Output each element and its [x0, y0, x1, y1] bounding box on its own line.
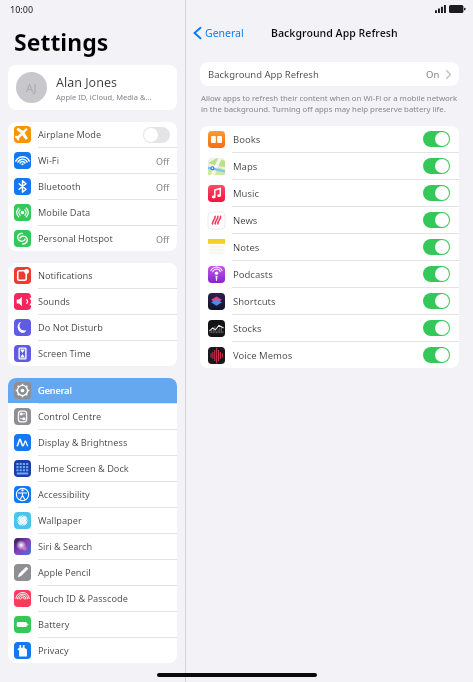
- button[interactable]: Music background refresh toggle: [423, 185, 450, 201]
- staticText: Wi-Fi: [38, 154, 156, 167]
- staticText: Maps: [233, 160, 423, 173]
- button[interactable]: Sounds: [8, 289, 177, 314]
- staticText: Siri & Search: [38, 540, 170, 553]
- button[interactable]: Voice Memos: [200, 342, 459, 368]
- staticText: Touch ID & Passcode: [38, 592, 170, 605]
- button[interactable]: Maps: [200, 153, 459, 179]
- staticText: On: [426, 68, 440, 81]
- button[interactable]: Wallpaper: [8, 508, 177, 533]
- button[interactable]: Stocks: [200, 315, 459, 341]
- staticText: Battery: [38, 618, 170, 631]
- button[interactable]: Screen Time: [8, 341, 177, 366]
- staticText: Podcasts: [233, 268, 423, 281]
- staticText: Home Screen & Dock: [38, 462, 170, 475]
- button[interactable]: General: [186, 23, 250, 43]
- button[interactable]: Display & Brightness: [8, 430, 177, 455]
- button[interactable]: General: [8, 378, 177, 403]
- staticText: Sounds: [38, 295, 170, 308]
- staticText: Do Not Disturb: [38, 321, 170, 334]
- button[interactable]: Notes background refresh toggle: [423, 239, 450, 255]
- button[interactable]: Shortcuts: [200, 288, 459, 314]
- staticText: Display & Brightness: [38, 436, 170, 449]
- button[interactable]: AJ: [8, 65, 177, 110]
- button[interactable]: Music: [200, 180, 459, 206]
- staticText: Notifications: [38, 269, 170, 282]
- staticText: Privacy: [38, 644, 170, 657]
- staticText: Music: [233, 187, 423, 200]
- button[interactable]: Bluetooth: [8, 174, 177, 199]
- staticText: Apple ID, iCloud, Media &…: [56, 92, 152, 102]
- button[interactable]: Accessibility: [8, 482, 177, 507]
- button[interactable]: Siri & Search: [8, 534, 177, 559]
- staticText: General: [38, 384, 170, 397]
- button[interactable]: Books: [200, 126, 459, 152]
- staticText: Background App Refresh: [208, 68, 426, 81]
- staticText: Off: [156, 181, 170, 193]
- staticText: Voice Memos: [233, 349, 423, 362]
- button[interactable]: Podcasts: [200, 261, 459, 287]
- button[interactable]: News background refresh toggle: [423, 212, 450, 228]
- button[interactable]: Airplane Mode toggle: [143, 127, 170, 143]
- staticText: Mobile Data: [38, 206, 170, 219]
- staticText: Wallpaper: [38, 514, 170, 527]
- staticText: Screen Time: [38, 347, 170, 360]
- button[interactable]: Notes: [200, 234, 459, 260]
- button[interactable]: Shortcuts background refresh toggle: [423, 293, 450, 309]
- staticText: Accessibility: [38, 488, 170, 501]
- button[interactable]: Mobile Data: [8, 200, 177, 225]
- staticText: Off: [156, 233, 170, 245]
- staticText: AJ: [26, 80, 37, 95]
- button[interactable]: Battery: [8, 612, 177, 637]
- staticText: Apple Pencil: [38, 566, 170, 579]
- staticText: Notes: [233, 241, 423, 254]
- button[interactable]: Notifications: [8, 263, 177, 288]
- staticText: 10:00: [10, 3, 34, 15]
- staticText: Stocks: [233, 322, 423, 335]
- button[interactable]: News: [200, 207, 459, 233]
- staticText: Alan Jones: [56, 74, 117, 91]
- button[interactable]: Touch ID & Passcode: [8, 586, 177, 611]
- staticText: Bluetooth: [38, 180, 156, 193]
- staticText: Personal Hotspot: [38, 232, 156, 245]
- button[interactable]: Stocks background refresh toggle: [423, 320, 450, 336]
- button[interactable]: Podcasts background refresh toggle: [423, 266, 450, 282]
- button[interactable]: Maps background refresh toggle: [423, 158, 450, 174]
- staticText: Shortcuts: [233, 295, 423, 308]
- staticText: Control Centre: [38, 410, 170, 423]
- button[interactable]: Wi-Fi: [8, 148, 177, 173]
- staticText: Settings: [14, 26, 109, 57]
- button[interactable]: Do Not Disturb: [8, 315, 177, 340]
- staticText: General: [205, 26, 244, 40]
- button[interactable]: Personal Hotspot: [8, 226, 177, 251]
- staticText: Airplane Mode: [38, 128, 143, 141]
- button[interactable]: Background App Refresh: [200, 62, 459, 86]
- button[interactable]: Privacy: [8, 638, 177, 663]
- button[interactable]: Apple Pencil: [8, 560, 177, 585]
- staticText: Off: [156, 155, 170, 167]
- button[interactable]: Voice Memos background refresh toggle: [423, 347, 450, 363]
- button[interactable]: Airplane Mode: [8, 122, 177, 147]
- button[interactable]: Control Centre: [8, 404, 177, 429]
- staticText: News: [233, 214, 423, 227]
- button[interactable]: Books background refresh toggle: [423, 131, 450, 147]
- staticText: Allow apps to refresh their content when…: [201, 93, 458, 115]
- staticText: Background App Refresh: [271, 26, 398, 40]
- staticText: Books: [233, 133, 423, 146]
- button[interactable]: Home Screen & Dock: [8, 456, 177, 481]
